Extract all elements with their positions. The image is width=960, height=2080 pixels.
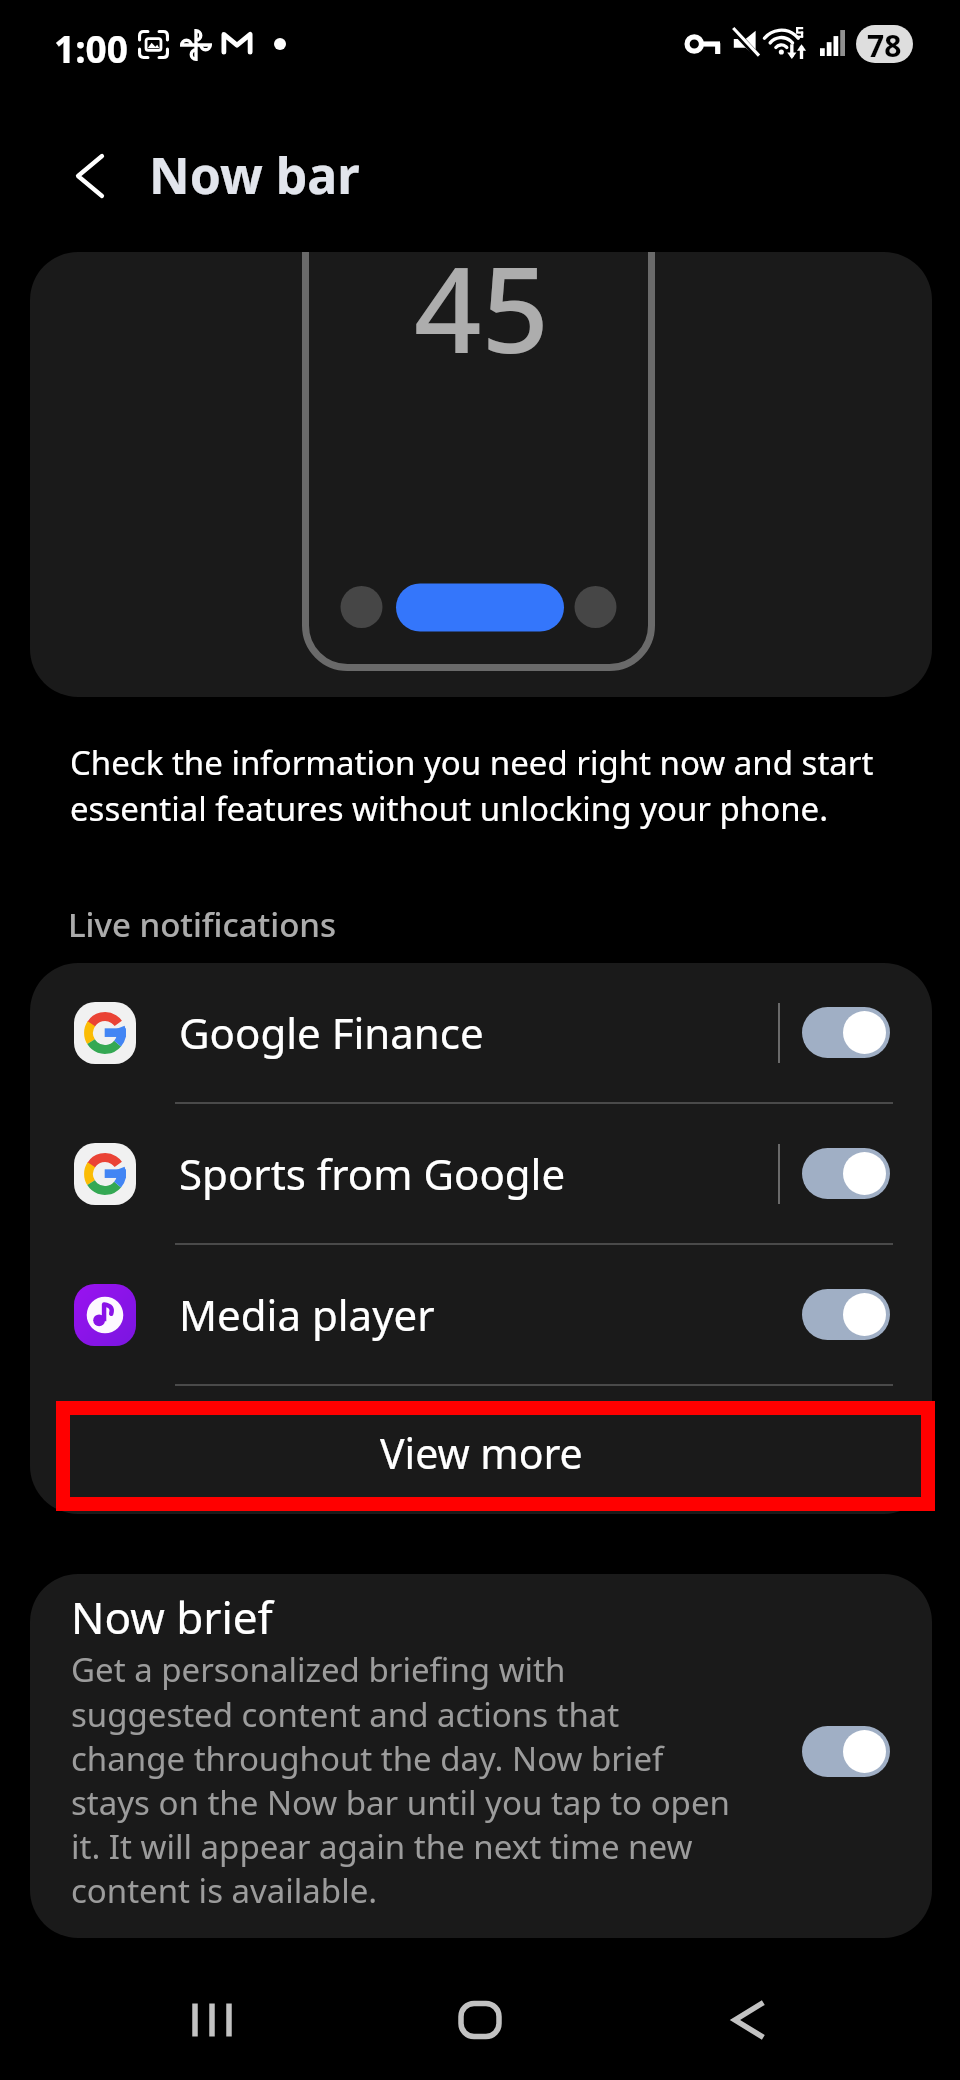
button[interactable]: View more [30,1386,932,1514]
button[interactable]: Now brief [30,1574,932,1938]
button[interactable]: Sports from Google [30,1104,932,1243]
button[interactable]: Recent apps [132,1961,292,2079]
staticText: Get a personalized briefing with suggest… [71,1647,731,1912]
button[interactable]: Back [57,141,127,211]
button[interactable]: Turn on Sports from Google notifications [802,1148,890,1199]
button[interactable]: Turn on Google Finance notifications [802,1007,890,1058]
staticText: Google Finance [179,1004,484,1061]
button[interactable]: Google Finance [30,963,932,1102]
button[interactable]: Media player [30,1245,932,1384]
staticText: View more [380,1425,583,1481]
staticText: Now brief [71,1587,273,1647]
button[interactable]: Turn on Now brief [802,1726,890,1777]
staticText: 45 [414,252,549,388]
staticText: 1:00 [54,23,128,73]
staticText: Check the information you need right now… [70,740,890,831]
staticText: 78 [867,25,902,63]
staticText: Media player [179,1286,435,1343]
button[interactable]: Back [668,1961,828,2079]
staticText: Live notifications [68,902,337,947]
staticText: Sports from Google [179,1145,566,1202]
staticText: Now bar [149,141,360,209]
button[interactable]: Home [400,1961,560,2079]
button[interactable]: Turn on Media player notifications [802,1289,890,1340]
